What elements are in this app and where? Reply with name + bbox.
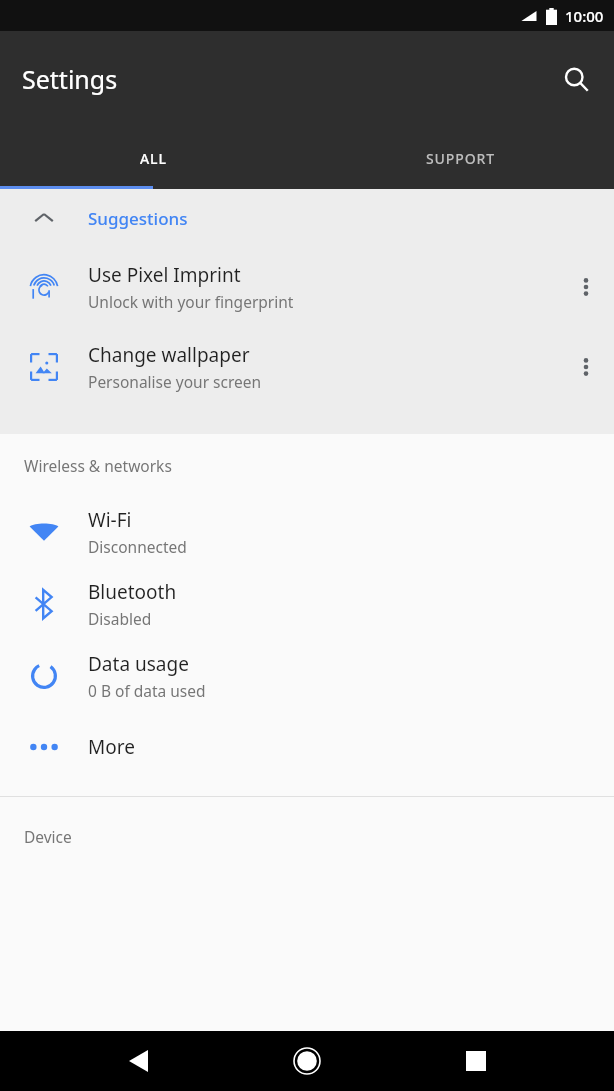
staticText: Wi-Fi bbox=[88, 507, 132, 533]
staticText: More bbox=[88, 734, 135, 760]
button[interactable]: Bluetooth bbox=[0, 568, 614, 640]
staticText: Use Pixel Imprint bbox=[88, 262, 241, 288]
button[interactable]: Data usage bbox=[0, 640, 614, 712]
staticText: ALL bbox=[140, 149, 167, 168]
button[interactable]: ALL bbox=[0, 127, 307, 189]
button[interactable]: Back bbox=[107, 1031, 169, 1091]
button[interactable]: Change wallpaper bbox=[0, 327, 614, 407]
button[interactable]: Search bbox=[552, 55, 600, 103]
button[interactable]: Recents bbox=[445, 1031, 507, 1091]
staticText: Personalise your screen bbox=[88, 371, 262, 392]
button[interactable]: More options bbox=[558, 259, 614, 315]
staticText: Data usage bbox=[88, 651, 189, 677]
staticText: Suggestions bbox=[88, 207, 188, 230]
staticText: Unlock with your fingerprint bbox=[88, 291, 294, 312]
button[interactable]: Suggestions bbox=[0, 189, 614, 247]
button[interactable]: Wi-Fi bbox=[0, 496, 614, 568]
staticText: Change wallpaper bbox=[88, 342, 250, 368]
staticText: Wireless & networks bbox=[24, 455, 172, 476]
staticText: Disconnected bbox=[88, 536, 187, 557]
button[interactable]: Use Pixel Imprint bbox=[0, 247, 614, 327]
staticText: Bluetooth bbox=[88, 579, 177, 605]
staticText: 10:00 bbox=[565, 6, 604, 26]
staticText: 0 B of data used bbox=[88, 680, 206, 701]
staticText: Settings bbox=[22, 62, 118, 96]
button[interactable]: More options bbox=[558, 339, 614, 395]
button[interactable]: SUPPORT bbox=[307, 127, 614, 189]
button[interactable]: Home bbox=[276, 1031, 338, 1091]
button[interactable]: More bbox=[0, 712, 614, 782]
staticText: Device bbox=[24, 826, 72, 847]
staticText: Disabled bbox=[88, 608, 152, 629]
staticText: SUPPORT bbox=[426, 149, 496, 168]
